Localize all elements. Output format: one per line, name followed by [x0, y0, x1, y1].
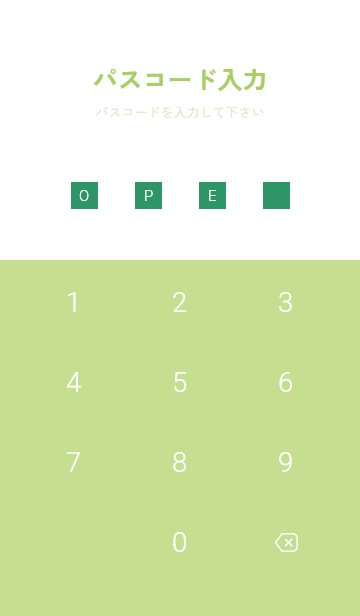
- staticText: パスコード入力: [92, 60, 268, 96]
- button[interactable]: 1: [21, 262, 127, 342]
- button[interactable]: 7: [21, 422, 127, 502]
- staticText: 6: [278, 366, 294, 398]
- staticText: 9: [278, 446, 294, 478]
- button[interactable]: Passcode character 1: [71, 182, 98, 209]
- staticText: E: [208, 187, 217, 205]
- button[interactable]: Passcode character 2: [135, 182, 162, 209]
- staticText: P: [144, 187, 154, 205]
- staticText: 4: [66, 366, 82, 398]
- staticText: 1: [66, 286, 82, 318]
- button[interactable]: 3: [233, 262, 339, 342]
- button[interactable]: 6: [233, 342, 339, 422]
- staticText: 8: [172, 446, 188, 478]
- staticText: 5: [172, 366, 188, 398]
- staticText: パスコードを入力して下さい: [95, 102, 265, 121]
- staticText: 0: [172, 526, 188, 558]
- button[interactable]: Passcode character 3: [199, 182, 226, 209]
- button[interactable]: 4: [21, 342, 127, 422]
- button[interactable]: 2: [127, 262, 233, 342]
- button[interactable]: 8: [127, 422, 233, 502]
- staticText: 7: [66, 446, 82, 478]
- button[interactable]: Backspace: [233, 502, 339, 582]
- staticText: 2: [172, 286, 188, 318]
- button[interactable]: 9: [233, 422, 339, 502]
- staticText: O: [79, 187, 90, 205]
- staticText: 3: [278, 286, 294, 318]
- button[interactable]: 0: [127, 502, 233, 582]
- button[interactable]: 5: [127, 342, 233, 422]
